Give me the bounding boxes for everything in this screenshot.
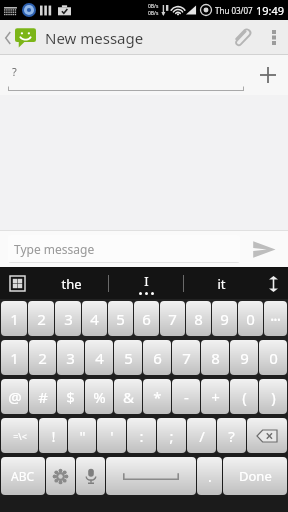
staticText: 3 xyxy=(64,309,73,329)
staticText: ••• xyxy=(270,313,281,325)
button[interactable]: ' xyxy=(97,418,126,453)
staticText: 5 xyxy=(116,309,125,329)
button[interactable]: / xyxy=(187,418,216,453)
staticText: ! xyxy=(51,426,56,446)
staticText: ABC xyxy=(11,468,35,484)
staticText: 0B/s xyxy=(148,3,159,10)
button[interactable]: # xyxy=(29,379,56,414)
button[interactable]: ABC xyxy=(1,457,45,495)
button[interactable]: * xyxy=(143,379,171,414)
staticText: 1 xyxy=(10,348,19,368)
staticText: 4 xyxy=(90,309,99,329)
staticText: " xyxy=(79,426,86,446)
button[interactable]: Add recipient xyxy=(248,55,288,95)
button[interactable]: Keyboard layouts xyxy=(0,268,34,299)
staticText: * xyxy=(153,387,162,407)
button[interactable]: ? xyxy=(217,418,246,453)
staticText: =\< xyxy=(13,430,27,442)
button[interactable]: the xyxy=(34,268,108,299)
button[interactable]: % xyxy=(85,379,113,414)
staticText: 6 xyxy=(142,309,151,329)
button[interactable]: 9 xyxy=(212,301,237,336)
staticText: New message xyxy=(45,28,144,48)
button[interactable]: ; xyxy=(157,418,186,453)
button[interactable]: 6 xyxy=(143,340,171,375)
staticText: 5 xyxy=(124,348,133,368)
button[interactable]: it xyxy=(184,268,258,299)
button[interactable]: " xyxy=(68,418,96,453)
button[interactable]: Backspace xyxy=(247,418,287,453)
button[interactable]: =\< xyxy=(1,418,38,453)
staticText: Type message xyxy=(14,241,95,257)
button[interactable]: Voice input xyxy=(76,457,105,495)
button[interactable]: 7 xyxy=(160,301,185,336)
button[interactable]: 7 xyxy=(172,340,200,375)
button[interactable]: 0 xyxy=(259,340,287,375)
button[interactable]: Space xyxy=(106,457,196,495)
button[interactable]: ? xyxy=(0,55,248,95)
staticText: the xyxy=(61,275,82,293)
staticText: ( xyxy=(242,387,247,407)
button[interactable]: ( xyxy=(230,379,258,414)
staticText: it xyxy=(217,275,226,293)
button[interactable]: 6 xyxy=(134,301,159,336)
staticText: # xyxy=(38,387,48,407)
button[interactable]: & xyxy=(114,379,142,414)
button[interactable]: 0 xyxy=(238,301,263,336)
button[interactable]: ••• xyxy=(264,301,287,336)
staticText: 6 xyxy=(153,348,162,368)
staticText: / xyxy=(199,426,205,446)
staticText: 19:49 xyxy=(256,3,285,18)
button[interactable]: 5 xyxy=(108,301,133,336)
staticText: ? xyxy=(12,64,17,79)
button[interactable]: . xyxy=(197,457,222,495)
staticText: 9 xyxy=(220,309,229,329)
staticText: @ xyxy=(8,387,22,407)
button[interactable]: Send xyxy=(240,230,288,268)
button[interactable]: 1 xyxy=(1,301,27,336)
staticText: 7 xyxy=(168,309,177,329)
button[interactable]: Attach xyxy=(222,20,260,55)
staticText: 0 xyxy=(246,309,255,329)
button[interactable]: ) xyxy=(259,379,287,414)
staticText: 3 xyxy=(66,348,75,368)
button[interactable]: : xyxy=(127,418,156,453)
button[interactable]: $ xyxy=(57,379,84,414)
staticText: $ xyxy=(66,387,75,407)
button[interactable]: + xyxy=(201,379,229,414)
button[interactable]: 8 xyxy=(201,340,229,375)
staticText: ; xyxy=(169,426,174,446)
staticText: 7 xyxy=(182,348,191,368)
button[interactable]: 3 xyxy=(57,340,84,375)
staticText: Done xyxy=(239,467,272,485)
button[interactable]: Done xyxy=(223,457,287,495)
button[interactable]: 2 xyxy=(29,340,56,375)
button[interactable]: 4 xyxy=(85,340,113,375)
staticText: 8 xyxy=(194,309,203,329)
button[interactable]: Expand suggestions xyxy=(258,268,288,299)
button[interactable]: 2 xyxy=(28,301,54,336)
button[interactable]: @ xyxy=(1,379,28,414)
button[interactable]: ! xyxy=(39,418,67,453)
staticText: ' xyxy=(110,426,114,446)
button[interactable]: Type message xyxy=(0,230,240,268)
button[interactable]: 8 xyxy=(186,301,211,336)
button[interactable]: 3 xyxy=(55,301,81,336)
button[interactable]: - xyxy=(172,379,200,414)
button[interactable]: 5 xyxy=(114,340,142,375)
staticText: - xyxy=(184,387,189,407)
button[interactable]: 9 xyxy=(230,340,258,375)
button[interactable]: More options xyxy=(260,20,288,55)
button[interactable]: 4 xyxy=(82,301,107,336)
button[interactable]: 1 xyxy=(1,340,28,375)
staticText: 0 xyxy=(269,348,278,368)
staticText: & xyxy=(123,387,134,407)
staticText: ) xyxy=(271,387,276,407)
staticText: : xyxy=(139,426,144,446)
button[interactable]: I xyxy=(109,268,183,299)
other: Back xyxy=(5,32,12,44)
button[interactable]: Settings xyxy=(46,457,75,495)
staticText: 2 xyxy=(37,309,46,329)
button[interactable]: Back xyxy=(0,20,40,55)
staticText: 0B/s xyxy=(148,10,159,17)
